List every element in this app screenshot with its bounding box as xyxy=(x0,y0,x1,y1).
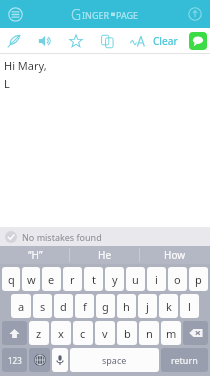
button[interactable]: Clear xyxy=(149,31,182,51)
button[interactable]: l xyxy=(180,294,199,318)
button[interactable]: z xyxy=(29,321,49,345)
button[interactable]: w xyxy=(22,267,40,291)
staticText: a xyxy=(18,299,25,314)
button[interactable]: j xyxy=(138,294,157,318)
button[interactable]: f xyxy=(75,294,94,318)
button[interactable]: m xyxy=(161,321,181,345)
staticText: b xyxy=(124,326,131,341)
staticText: g xyxy=(102,299,109,314)
staticText: Clear xyxy=(153,34,178,48)
button[interactable]: h xyxy=(117,294,136,318)
button[interactable]: c xyxy=(73,321,93,345)
button[interactable]: u xyxy=(126,267,145,291)
staticText: t xyxy=(92,272,96,287)
button[interactable]: 123 xyxy=(2,348,27,372)
button[interactable]: space xyxy=(70,348,159,372)
button[interactable]: q xyxy=(2,267,20,291)
button[interactable]: b xyxy=(117,321,137,345)
button[interactable]: x xyxy=(51,321,71,345)
staticText: q xyxy=(8,272,15,287)
button[interactable]: n xyxy=(139,321,159,345)
staticText: m xyxy=(166,326,177,341)
button[interactable]: y xyxy=(105,267,124,291)
button[interactable]: d xyxy=(54,294,73,318)
button[interactable]: a xyxy=(11,294,31,318)
staticText: i xyxy=(155,272,158,287)
button[interactable]: He xyxy=(70,246,140,264)
staticText: o xyxy=(174,272,181,287)
staticText: n xyxy=(146,326,153,341)
staticText: d xyxy=(60,299,67,314)
button[interactable]: Voice input xyxy=(52,348,68,372)
staticText: PAGE xyxy=(116,9,139,21)
button[interactable]: Messages xyxy=(189,32,207,50)
button[interactable]: Menu xyxy=(5,4,25,24)
staticText: k xyxy=(166,299,172,314)
button[interactable]: v xyxy=(95,321,115,345)
button[interactable]: return xyxy=(161,348,208,372)
staticText: u xyxy=(132,272,139,287)
staticText: x xyxy=(58,326,64,341)
button[interactable]: Speak xyxy=(34,30,56,52)
button[interactable]: Hi Mary, xyxy=(0,54,210,227)
button[interactable]: i xyxy=(147,267,166,291)
button[interactable]: p xyxy=(189,267,208,291)
button[interactable]: Share xyxy=(185,4,205,24)
staticText: w xyxy=(27,272,36,287)
button[interactable]: g xyxy=(96,294,115,318)
staticText: space xyxy=(102,354,127,366)
button[interactable]: k xyxy=(159,294,178,318)
staticText: e xyxy=(48,272,55,287)
staticText: y xyxy=(112,272,118,287)
button[interactable]: “H” xyxy=(0,246,70,264)
staticText: “H” xyxy=(28,248,43,262)
button[interactable]: s xyxy=(33,294,52,318)
staticText: No mistakes found xyxy=(22,231,102,243)
staticText: r xyxy=(70,272,75,287)
button[interactable]: Backspace xyxy=(183,321,208,345)
staticText: How xyxy=(164,248,186,262)
staticText: L xyxy=(4,76,10,91)
button[interactable]: How xyxy=(140,246,210,264)
staticText: return xyxy=(171,354,198,366)
staticText: z xyxy=(36,326,42,341)
button[interactable]: Change keyboard xyxy=(29,348,50,372)
staticText: j xyxy=(146,299,149,314)
button[interactable]: t xyxy=(84,267,103,291)
button[interactable]: o xyxy=(168,267,187,291)
button[interactable]: r xyxy=(63,267,82,291)
staticText: He xyxy=(98,248,112,262)
staticText: p xyxy=(195,272,202,287)
staticText: s xyxy=(40,299,46,314)
staticText: h xyxy=(123,299,130,314)
button[interactable]: Write xyxy=(3,30,25,52)
staticText: Hi Mary, xyxy=(4,58,47,73)
staticText: 123 xyxy=(8,355,22,366)
button[interactable]: e xyxy=(42,267,61,291)
button[interactable]: Text style xyxy=(127,30,149,52)
button[interactable]: Shift xyxy=(2,321,27,345)
staticText: c xyxy=(80,326,86,341)
staticText: l xyxy=(188,299,191,314)
staticText: INGER xyxy=(82,9,110,21)
staticText: v xyxy=(102,326,108,341)
staticText: f xyxy=(83,299,87,314)
button[interactable]: Favorite xyxy=(65,30,87,52)
button[interactable]: Copy xyxy=(96,30,118,52)
staticText: G xyxy=(71,5,82,24)
